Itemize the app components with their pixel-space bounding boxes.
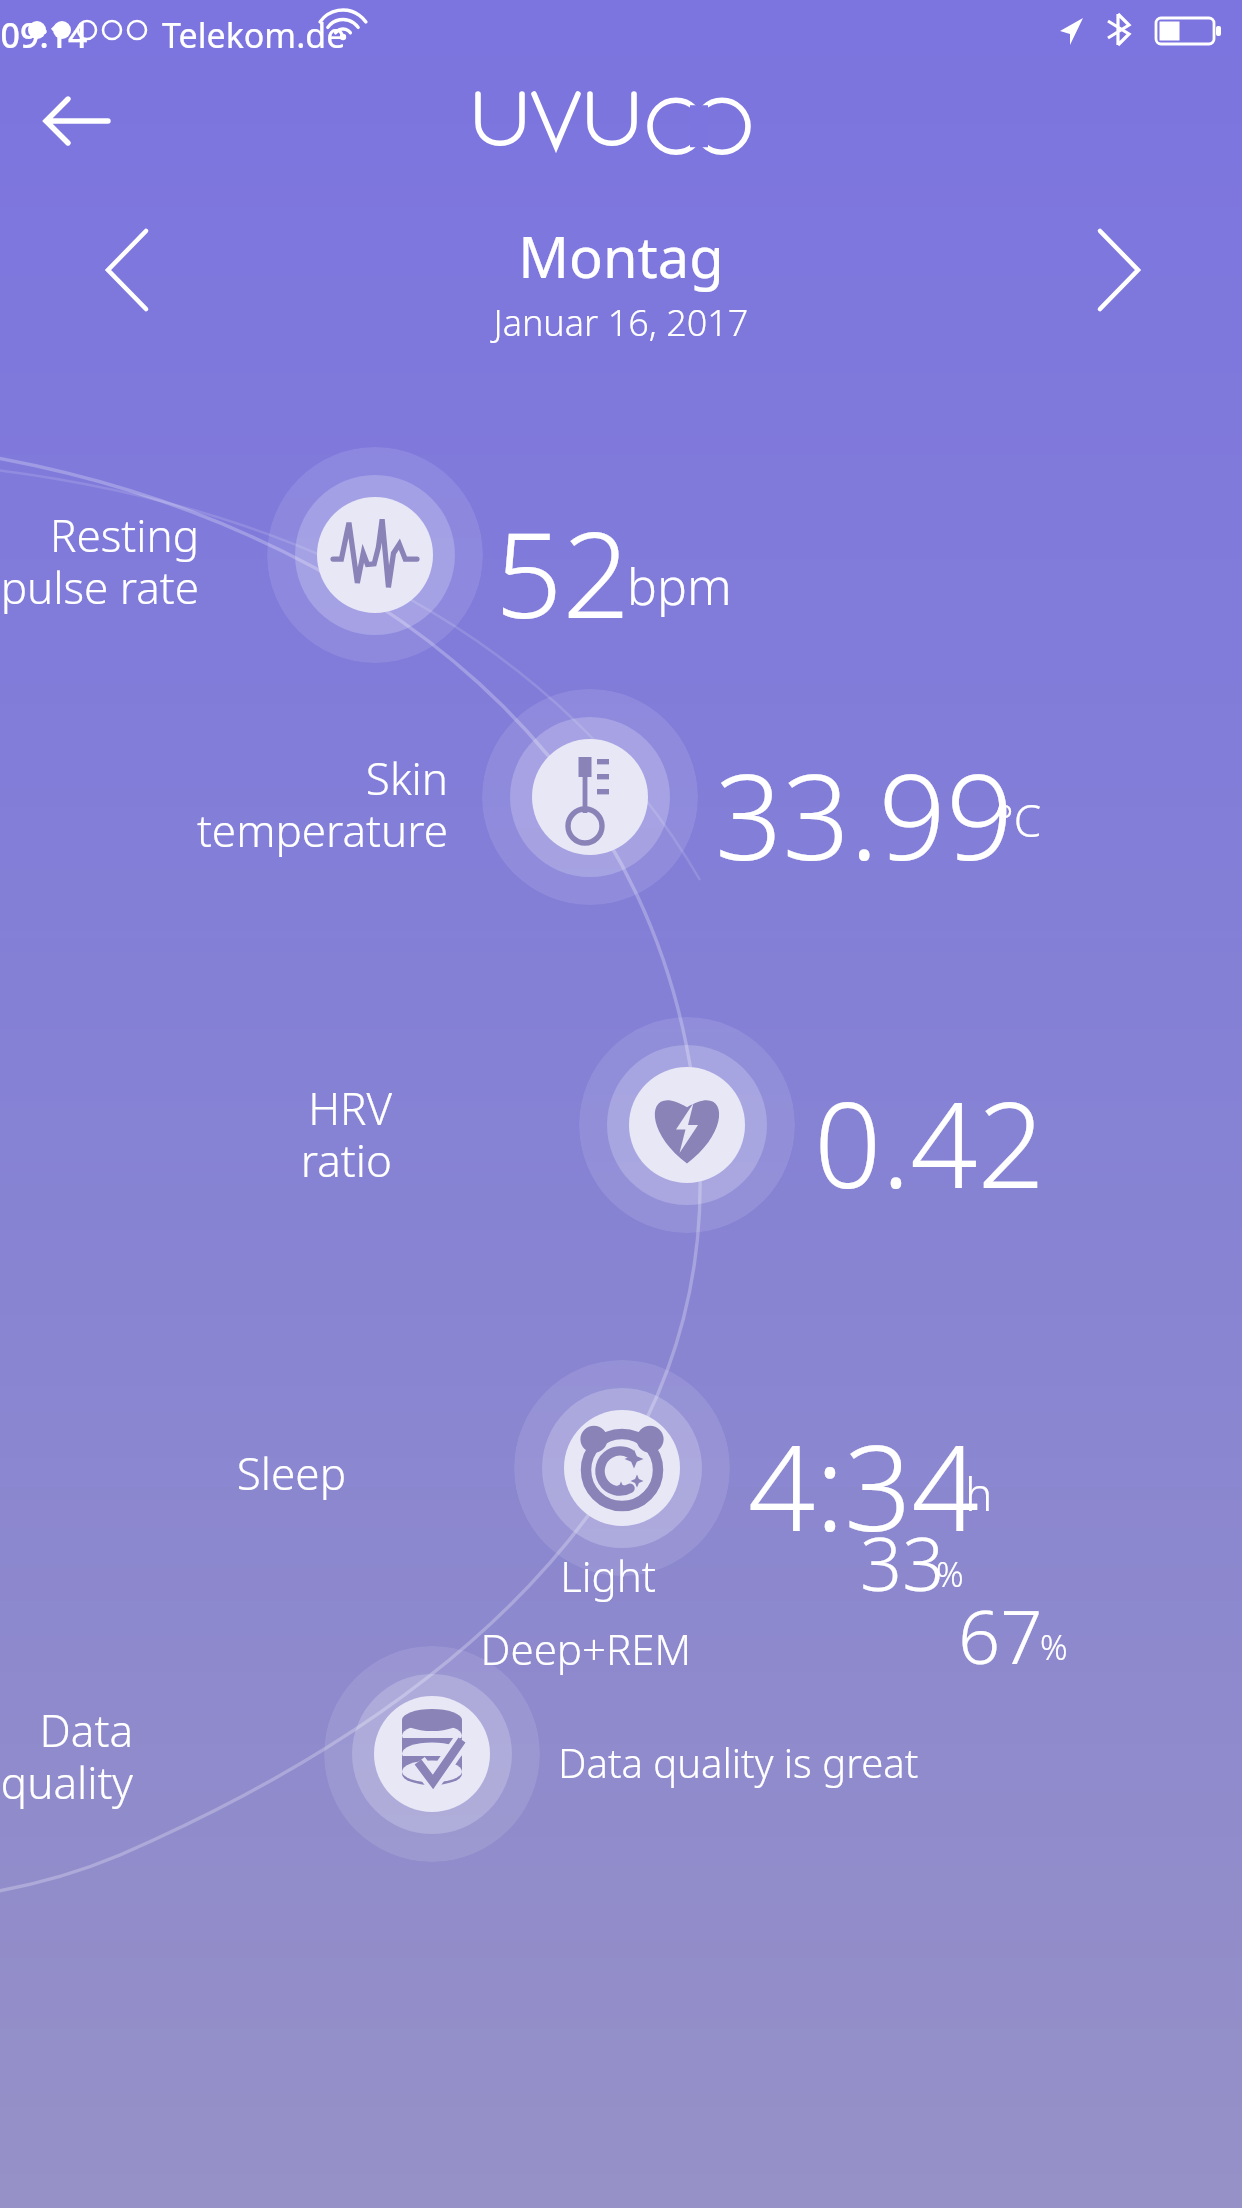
staticText: 67 xyxy=(958,1585,1043,1686)
staticText: Data quality is great xyxy=(558,1735,919,1789)
button[interactable]: Sleep xyxy=(514,1360,730,1576)
button[interactable]: Previous day xyxy=(80,215,190,325)
button[interactable]: Next day xyxy=(1060,215,1170,325)
staticText: bpm xyxy=(627,552,732,620)
staticText: 0.42 xyxy=(814,1062,1045,1223)
staticText: % xyxy=(936,1551,964,1597)
staticText: Sleep xyxy=(236,1443,346,1503)
staticText: 4:34 xyxy=(748,1405,979,1566)
staticText: Resting pulse rate xyxy=(0,505,199,617)
staticText: Montag xyxy=(321,218,921,294)
staticText: h xyxy=(965,1462,993,1525)
button[interactable]: Montag xyxy=(321,218,921,343)
staticText: 52 xyxy=(495,492,630,653)
staticText: Light xyxy=(560,1547,656,1604)
staticText: 33.99 xyxy=(715,734,1014,895)
staticText: 33 xyxy=(860,1512,945,1613)
staticText: 09:14 xyxy=(0,12,88,58)
button[interactable]: Data quality xyxy=(324,1646,540,1862)
staticText: Januar 16, 2017 xyxy=(321,298,921,347)
staticText: Data quality xyxy=(0,1700,133,1812)
staticText: Deep+REM xyxy=(480,1620,691,1677)
staticText: Skin temperature xyxy=(196,748,448,860)
button[interactable]: HRV ratio xyxy=(579,1017,795,1233)
staticText: % xyxy=(1040,1624,1068,1670)
button[interactable]: Skin temperature xyxy=(482,689,698,905)
button[interactable]: Resting pulse rate xyxy=(267,447,483,663)
staticText: HRV ratio xyxy=(300,1078,392,1190)
staticText: °C xyxy=(995,790,1042,850)
button[interactable]: Back xyxy=(22,74,132,168)
staticText: Telekom.de xyxy=(162,12,346,58)
